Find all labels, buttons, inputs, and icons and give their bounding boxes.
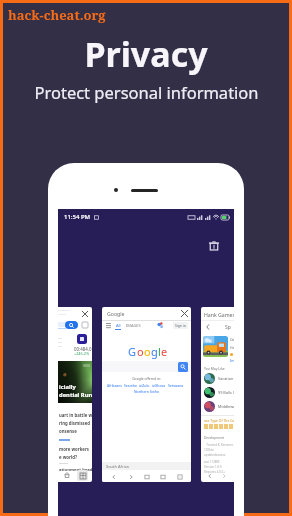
button[interactable]: Clear all: [208, 240, 220, 252]
button[interactable]: Forward: [219, 471, 228, 480]
button[interactable]: Google: [102, 307, 191, 482]
staticText: icially: [59, 383, 76, 391]
staticText: G: [128, 344, 137, 359]
staticText: size 113MB: [204, 460, 220, 464]
button[interactable]: nav0: [109, 472, 118, 481]
staticText: You May Like: [204, 366, 225, 371]
staticText: Google: [107, 310, 125, 317]
button[interactable]: Search: [65, 321, 78, 329]
button[interactable]: nav4: [175, 472, 184, 481]
staticText: Requires 4.0.3+: [204, 470, 225, 474]
button[interactable]: Feed: [77, 470, 88, 481]
staticText: l: [158, 344, 161, 359]
staticText: g: [151, 344, 158, 359]
staticText: e world?: [59, 454, 78, 460]
button[interactable]: nav1: [126, 472, 135, 481]
staticText: Protect personal information: [34, 81, 259, 103]
staticText: more workers: [59, 446, 89, 452]
button[interactable]: nav2: [142, 472, 151, 481]
staticText: IMAGES: [126, 323, 141, 328]
staticText: 99 Balls Ga: [218, 390, 234, 395]
staticText: South Africa: [106, 464, 129, 469]
staticText: Middleware: [218, 404, 234, 409]
button[interactable]: Search: [58, 307, 92, 482]
staticText: Sesotho: [124, 383, 137, 388]
staticText: All: [116, 323, 121, 328]
button[interactable]: Back: [204, 323, 212, 331]
button[interactable]: Middleware: [204, 400, 234, 413]
button[interactable]: 99 Balls Ga: [204, 386, 234, 399]
staticText: onsense: [59, 428, 77, 434]
staticText: isiZulu: [139, 383, 150, 388]
staticText: 00:484.0: [74, 346, 92, 352]
staticText: Version 1.0.0: [204, 465, 222, 469]
staticText: see Type Of The Game: [204, 418, 234, 423]
staticText: Sp: [225, 324, 231, 331]
staticText: updatedxxxxxx: [204, 453, 226, 457]
staticText: Trusted & Recomm: [204, 443, 234, 447]
button[interactable]: Search: [178, 362, 188, 372]
staticText: Setswana: [168, 383, 184, 388]
staticText: 120ktu: [204, 448, 214, 452]
button[interactable]: Home: [62, 470, 72, 480]
button[interactable]: Sign in: [173, 322, 188, 329]
staticText: e: [161, 344, 168, 359]
staticText: Ga: [230, 337, 234, 343]
staticText: o: [144, 344, 151, 359]
button[interactable]: nav3: [158, 472, 167, 481]
staticText: Privacy: [84, 31, 208, 77]
staticText: +246.2%: [74, 351, 90, 356]
staticText: ring dismissed: [59, 420, 91, 426]
staticText: dential Run: [59, 391, 92, 399]
staticText: uart in battle with: [59, 412, 92, 418]
staticText: Sign in: [175, 323, 186, 328]
staticText: hack-cheat.org: [8, 6, 106, 24]
button[interactable]: Back: [205, 471, 214, 480]
button[interactable]: Vacation A: [204, 372, 234, 385]
staticText: Northern Sotho: [102, 389, 191, 394]
staticText: Hank Games: [204, 311, 234, 318]
staticText: Development: [204, 436, 225, 440]
staticText: o: [137, 344, 144, 359]
staticText: Vacation A: [218, 376, 234, 381]
staticText: 11:54 PM: [64, 213, 91, 221]
staticText: isiXhosa: [152, 383, 166, 388]
staticText: Google offered in:: [102, 376, 191, 381]
button[interactable]: Hank Games: [201, 307, 234, 482]
staticText: ationment haad: [59, 467, 92, 473]
staticText: Afrikaans: [107, 383, 122, 388]
staticText: Ha: [230, 345, 234, 350]
staticText: Ins: [230, 358, 234, 363]
